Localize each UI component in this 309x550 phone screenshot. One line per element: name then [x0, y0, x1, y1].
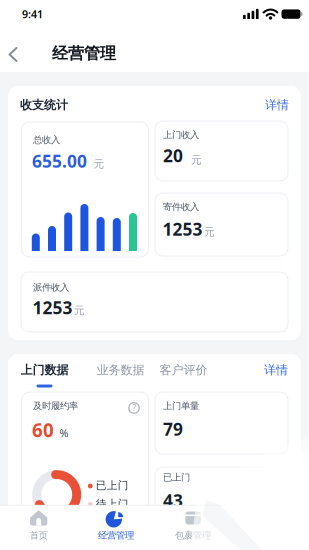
button[interactable]	[0, 45, 26, 64]
staticText: 首页	[30, 530, 48, 541]
staticText: 已上门	[163, 472, 190, 483]
staticText: 79	[163, 417, 183, 440]
staticText: 及时履约率	[33, 400, 78, 412]
staticText: 详情	[265, 98, 289, 112]
staticText: 元	[74, 304, 85, 317]
staticText: 寄件收入	[163, 201, 199, 213]
staticText: ?	[132, 403, 135, 413]
staticText: 派件收入	[33, 282, 69, 293]
staticText: 客户评价	[159, 363, 207, 377]
button[interactable]: 首页	[0, 505, 77, 550]
button[interactable]: 上门数据	[20, 363, 80, 377]
staticText: 60	[32, 418, 54, 442]
staticText: 43	[163, 489, 183, 512]
button[interactable]: 经营管理	[77, 505, 154, 550]
staticText: 20	[163, 144, 183, 167]
staticText: 1253	[32, 296, 72, 319]
button[interactable]: 详情	[249, 98, 289, 112]
button[interactable]: 客户评价	[159, 363, 219, 377]
button[interactable]: 详情	[248, 363, 288, 377]
staticText: 上门数据	[20, 363, 68, 377]
staticText: 包裹管理	[175, 530, 211, 541]
staticText: 已上门	[96, 479, 129, 492]
staticText: 经营管理	[52, 44, 116, 63]
button[interactable]: ?	[128, 402, 140, 414]
staticText: 元	[93, 157, 104, 170]
staticText: 9:41	[22, 7, 43, 21]
button[interactable]: 我的	[232, 505, 309, 550]
staticText: 元	[204, 225, 215, 238]
staticText: 业务数据	[96, 363, 144, 377]
staticText: 上门单量	[163, 400, 199, 412]
staticText: 收支统计	[20, 98, 68, 112]
button[interactable]: 包裹管理	[154, 505, 231, 550]
staticText: 元	[191, 153, 202, 166]
staticText: 655.00	[32, 149, 87, 172]
staticText: %	[59, 426, 68, 440]
staticText: 1253	[162, 217, 202, 240]
button[interactable]: 业务数据	[96, 363, 156, 377]
staticText: 总收入	[33, 134, 60, 146]
staticText: 详情	[264, 363, 288, 377]
staticText: 待上门	[96, 497, 129, 510]
staticText: 上门收入	[163, 129, 199, 141]
staticText: 经营管理	[98, 530, 134, 541]
